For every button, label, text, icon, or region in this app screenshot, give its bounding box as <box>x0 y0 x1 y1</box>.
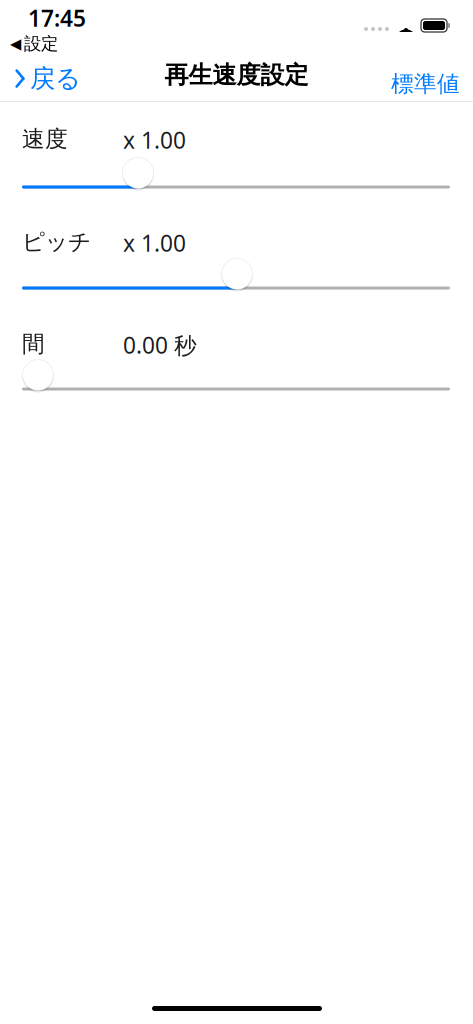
button[interactable]: 間 <box>22 359 450 390</box>
staticText: 0.00 秒 <box>123 330 197 360</box>
staticText: 戻る <box>30 63 81 94</box>
staticText: 間 <box>22 330 45 358</box>
staticText: ピッチ <box>22 228 91 256</box>
staticText: 速度 <box>22 125 68 153</box>
button[interactable]: 戻る <box>2 57 91 100</box>
staticText: x 1.00 <box>123 125 186 155</box>
staticText: 設定 <box>24 33 58 54</box>
button[interactable]: ピッチ <box>22 258 450 289</box>
staticText: 標準値 <box>391 70 460 98</box>
button[interactable]: ◀ <box>4 31 64 56</box>
button[interactable]: 標準値 <box>380 62 471 106</box>
staticText: ◀ <box>10 35 21 52</box>
button[interactable]: 速度 <box>22 157 450 188</box>
staticText: 17:45 <box>28 3 86 33</box>
staticText: x 1.00 <box>123 228 186 258</box>
staticText: 再生速度設定 <box>164 60 308 90</box>
